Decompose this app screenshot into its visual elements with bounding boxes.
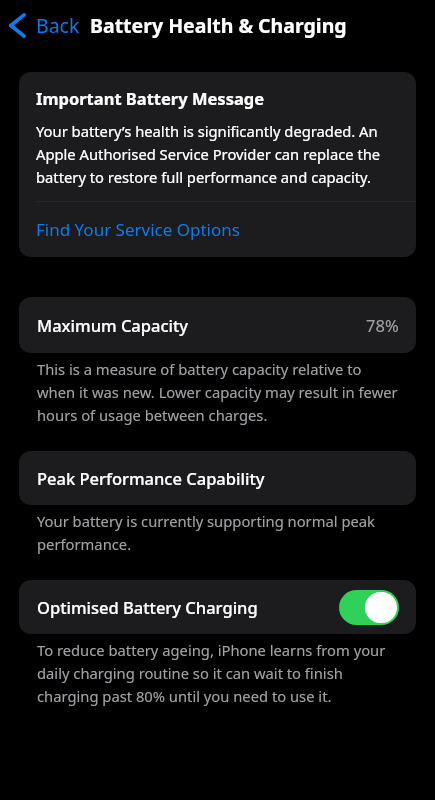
staticText: Your battery’s health is significantly d… [36,119,399,188]
button[interactable]: Maximum Capacity [19,297,416,353]
staticText: Maximum Capacity [37,314,189,336]
staticText: Peak Performance Capability [37,467,265,489]
button[interactable]: Find Your Service Options [19,202,416,257]
button[interactable]: Peak Performance Capability [19,451,416,505]
staticText: 78% [366,314,399,336]
button[interactable]: Optimised Battery Charging [19,580,416,634]
staticText: To reduce battery ageing, iPhone learns … [37,638,399,707]
staticText: Your battery is currently supporting nor… [37,509,399,555]
staticText: Optimised Battery Charging [37,596,258,618]
button[interactable]: Back [0,4,84,47]
staticText: Battery Health & Charging [90,12,347,39]
staticText: Find Your Service Options [36,218,240,241]
button[interactable]: Optimised Battery Charging [339,590,399,625]
staticText: Important Battery Message [36,87,265,109]
staticText: Back [36,12,80,39]
staticText: This is a measure of battery capacity re… [37,357,399,426]
